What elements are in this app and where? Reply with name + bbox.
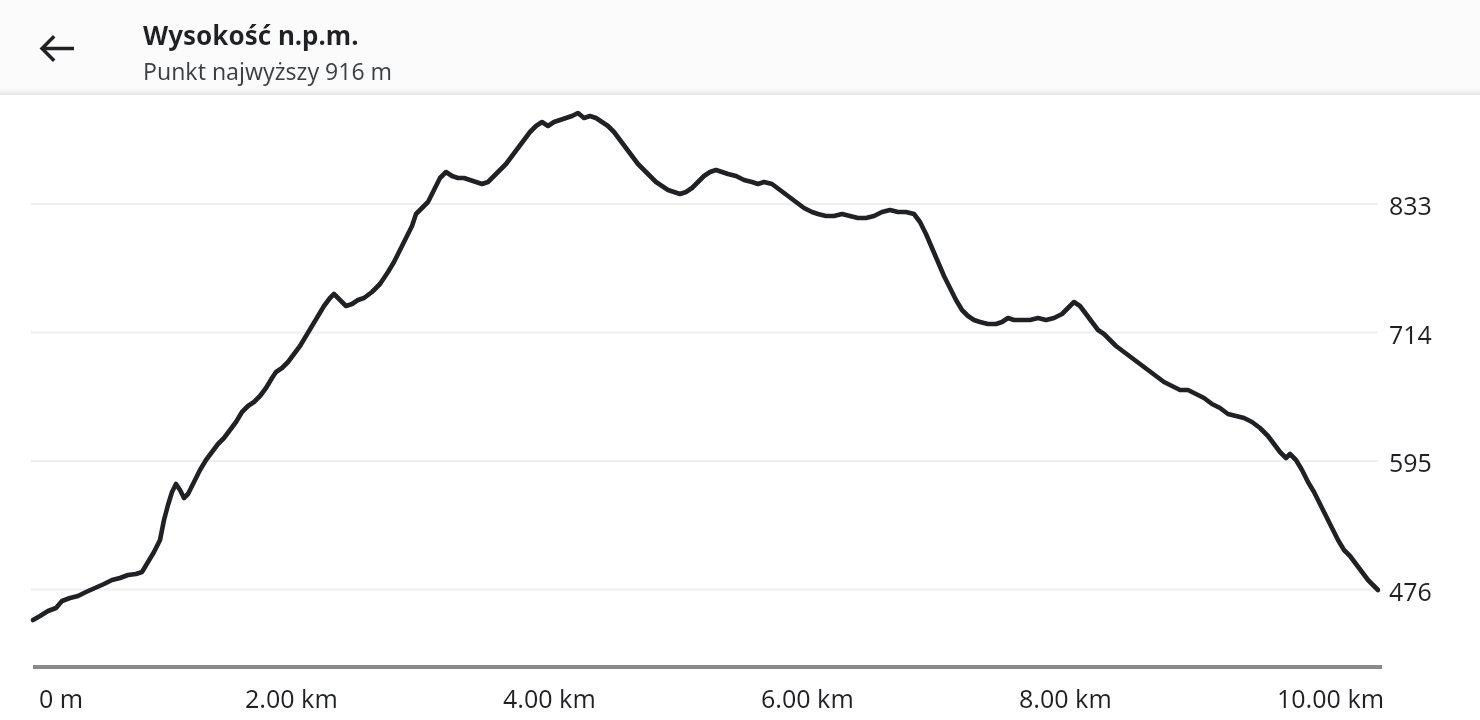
staticText: Wysokość n.p.m. [143, 17, 359, 52]
staticText: 4.00 km [503, 681, 596, 715]
staticText: 714 [1389, 317, 1432, 351]
staticText: 595 [1389, 445, 1432, 479]
button[interactable]: Back [31, 22, 83, 74]
staticText: 2.00 km [245, 681, 338, 715]
staticText: 476 [1389, 574, 1432, 608]
staticText: Punkt najwyższy 916 m [143, 55, 393, 86]
staticText: 10.00 km [1277, 681, 1385, 715]
staticText: 6.00 km [761, 681, 854, 715]
staticText: 833 [1389, 188, 1432, 222]
staticText: 8.00 km [1019, 681, 1112, 715]
staticText: 0 m [39, 681, 84, 715]
